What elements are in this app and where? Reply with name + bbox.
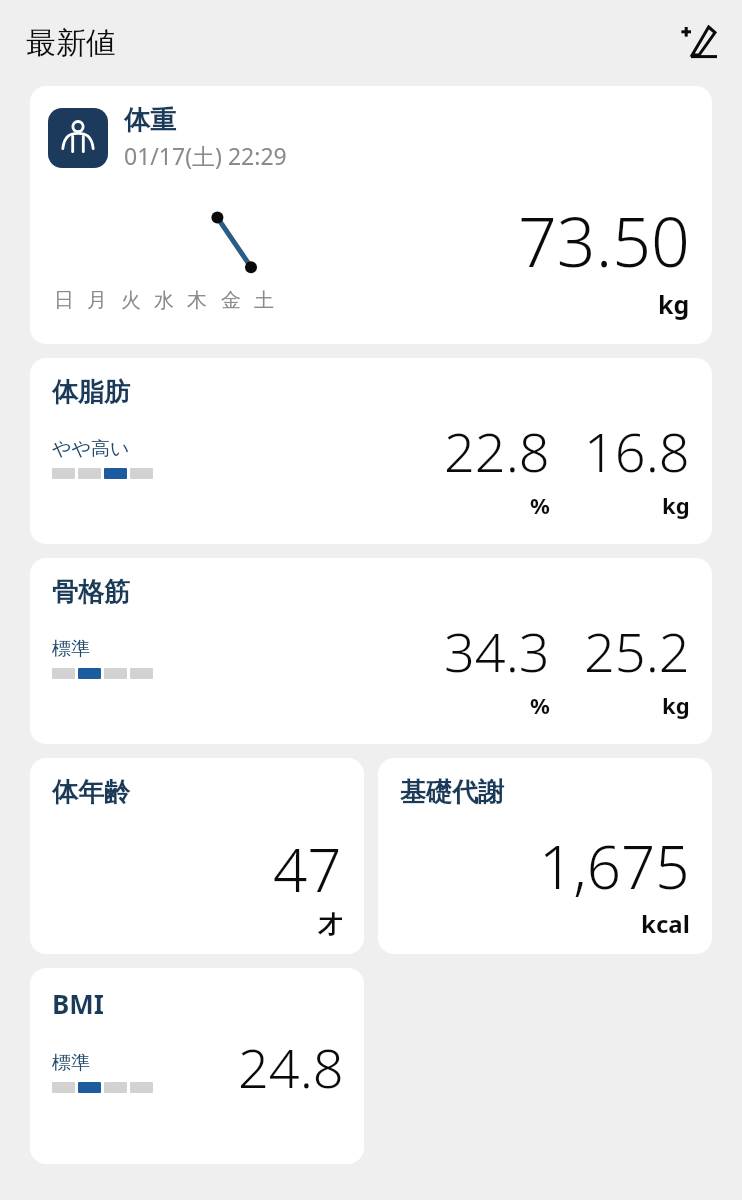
staticText: 金 xyxy=(221,288,241,313)
staticText: 標準 xyxy=(52,637,90,661)
staticText: 木 xyxy=(187,288,207,313)
staticText: 体年齢 xyxy=(52,776,130,809)
button[interactable]: 体脂肪 xyxy=(30,358,712,544)
staticText: やや高い xyxy=(52,437,130,461)
staticText: % xyxy=(530,490,550,520)
staticText: 骨格筋 xyxy=(52,576,130,609)
staticText: 月 xyxy=(87,288,107,313)
staticText: 土 xyxy=(254,288,274,313)
staticText: 日 xyxy=(54,288,74,313)
staticText: 73.50 xyxy=(518,194,690,287)
button[interactable]: 体重 xyxy=(30,86,712,344)
staticText: 水 xyxy=(154,288,174,313)
staticText: 火 xyxy=(121,288,141,313)
button[interactable]: 骨格筋 xyxy=(30,558,712,744)
staticText: % xyxy=(530,690,550,720)
staticText: 体重 xyxy=(124,104,176,137)
staticText: 16.8 xyxy=(584,414,690,488)
staticText: 01/17(土) 22:29 xyxy=(124,140,287,171)
staticText: kcal xyxy=(641,907,690,940)
button[interactable]: 基礎代謝 xyxy=(378,758,712,954)
button[interactable]: 体年齢 xyxy=(30,758,364,954)
staticText: kg xyxy=(662,690,690,720)
staticText: 標準 xyxy=(52,1051,90,1075)
staticText: 基礎代謝 xyxy=(400,776,504,809)
staticText: 47 xyxy=(273,828,342,910)
staticText: 最新値 xyxy=(26,24,116,62)
staticText: 34.3 xyxy=(444,614,550,688)
staticText: 1,675 xyxy=(539,825,690,907)
staticText: 体脂肪 xyxy=(52,376,130,409)
staticText: 才 xyxy=(318,910,342,940)
button[interactable]: BMI xyxy=(30,968,364,1164)
staticText: 22.8 xyxy=(444,414,550,488)
staticText: 25.2 xyxy=(584,614,690,688)
staticText: kg xyxy=(662,490,690,520)
staticText: kg xyxy=(658,287,690,321)
button[interactable]: 記録を追加 xyxy=(670,14,728,72)
staticText: 24.8 xyxy=(238,1030,344,1104)
staticText: BMI xyxy=(52,986,104,1021)
